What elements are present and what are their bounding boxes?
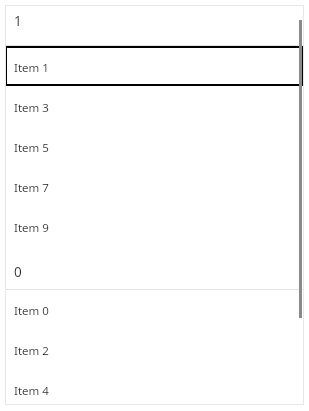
button[interactable]: Item 4 [5,370,304,405]
button[interactable]: Item 1 [5,46,304,86]
staticText: Item 5 [14,140,49,156]
button[interactable]: Item 7 [5,166,304,206]
button[interactable]: Item 5 [5,126,304,166]
staticText: Item 4 [14,383,49,399]
staticText: Item 7 [14,180,49,196]
staticText: Item 2 [14,343,49,359]
staticText: Item 1 [14,60,49,76]
button[interactable]: 0 [5,246,304,290]
staticText: 0 [14,263,22,281]
button[interactable]: Item 2 [5,330,304,370]
button[interactable]: Item 9 [5,206,304,246]
button[interactable]: Item 0 [5,290,304,330]
staticText: Item 9 [14,220,49,236]
button[interactable]: 1 [5,5,304,46]
staticText: Item 0 [14,303,49,319]
button[interactable]: Item 3 [5,86,304,126]
staticText: Item 3 [14,100,49,116]
staticText: 1 [14,12,22,30]
